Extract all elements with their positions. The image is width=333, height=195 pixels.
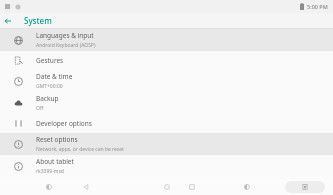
button[interactable]: Gestures bbox=[0, 51, 333, 70]
staticText: Backup bbox=[36, 94, 59, 103]
button[interactable]: Screenshot bbox=[285, 181, 325, 193]
button[interactable]: About tablet bbox=[0, 155, 333, 177]
staticText: rk3399-msd bbox=[36, 168, 64, 175]
button[interactable]: Developer options bbox=[0, 114, 333, 133]
button[interactable]: Reset options bbox=[0, 133, 333, 155]
staticText: Date & time bbox=[36, 72, 73, 81]
staticText: Reset options bbox=[36, 135, 78, 144]
staticText: Languages & input bbox=[36, 31, 94, 40]
staticText: Network, apps, or device can be reset bbox=[36, 146, 124, 153]
staticText: Developer options bbox=[36, 119, 92, 128]
staticText: About tablet bbox=[36, 157, 74, 166]
staticText: Android Keyboard (AOSP) bbox=[36, 42, 96, 49]
button[interactable]: Home bbox=[160, 180, 174, 194]
staticText: GMT+00:00 bbox=[36, 83, 63, 90]
button[interactable]: Backup bbox=[0, 92, 333, 114]
staticText: 5:00 PM bbox=[307, 3, 328, 10]
button[interactable]: Languages & input bbox=[0, 29, 333, 51]
button[interactable]: Rotate bbox=[240, 180, 254, 194]
button[interactable]: Keyboard bbox=[42, 180, 56, 194]
button[interactable]: Back bbox=[0, 13, 15, 28]
staticText: Gestures bbox=[36, 56, 64, 65]
staticText: Off bbox=[36, 105, 44, 112]
button[interactable]: Recents bbox=[185, 180, 199, 194]
button[interactable]: Date & time bbox=[0, 70, 333, 92]
staticText: System bbox=[24, 15, 52, 26]
button[interactable]: Back bbox=[79, 180, 93, 194]
